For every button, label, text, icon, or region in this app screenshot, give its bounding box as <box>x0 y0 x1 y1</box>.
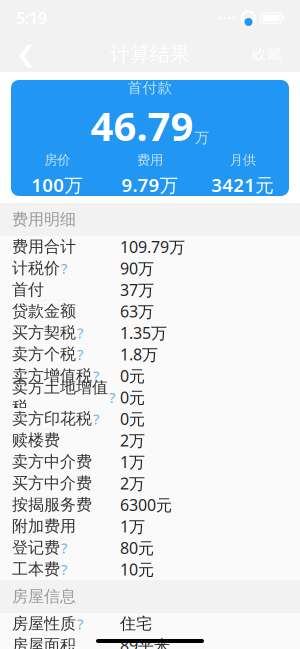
staticText: ? <box>93 409 99 428</box>
staticText: ? <box>109 387 115 407</box>
staticText: 登记费 <box>12 538 60 558</box>
staticText: 首付款 <box>127 79 172 97</box>
staticText: ? <box>77 614 83 633</box>
staticText: 住宅 <box>120 614 152 634</box>
staticText: 2万 <box>120 473 145 494</box>
staticText: 1万 <box>120 516 145 537</box>
staticText: 贷款金额 <box>12 301 76 321</box>
staticText: 2万 <box>120 430 145 451</box>
staticText: 63万 <box>120 301 154 322</box>
staticText: 卖方中介费 <box>12 452 92 472</box>
staticText: ? <box>61 559 67 579</box>
button[interactable]: Back <box>6 36 46 72</box>
staticText: 卖方土地增值税 <box>12 378 108 417</box>
staticText: ? <box>93 366 99 385</box>
staticText: 月供 <box>230 152 256 168</box>
staticText: 买方中介费 <box>12 473 92 493</box>
staticText: 房屋面积 <box>12 635 76 649</box>
staticText: 费用合计 <box>12 237 76 257</box>
staticText: 按揭服务费 <box>12 495 92 515</box>
staticText: 89平米 <box>120 635 170 649</box>
staticText: 费用明细 <box>12 210 76 229</box>
staticText: 6300元 <box>120 494 172 515</box>
staticText: ? <box>77 344 83 364</box>
staticText: 万 <box>194 129 209 147</box>
staticText: ? <box>61 538 67 557</box>
staticText: 90万 <box>120 258 154 279</box>
staticText: 工本费 <box>12 559 60 579</box>
staticText: 赎楼费 <box>12 430 60 450</box>
staticText: 卖方印花税 <box>12 409 92 429</box>
staticText: 卖方个税 <box>12 344 76 364</box>
staticText: ? <box>61 258 67 278</box>
staticText: 0元 <box>120 365 145 386</box>
staticText: 37万 <box>120 279 154 300</box>
staticText: 房价 <box>44 152 70 168</box>
staticText: 9.79万 <box>121 172 178 197</box>
staticText: 买方契税 <box>12 323 76 343</box>
staticText: 46.79 <box>90 99 193 152</box>
staticText: 计税价 <box>12 258 60 278</box>
staticText: 首付 <box>12 280 44 300</box>
staticText: 收藏 <box>252 45 282 63</box>
staticText: 100万 <box>31 172 83 197</box>
staticText: ? <box>77 323 83 342</box>
staticText: 3421元 <box>211 172 274 197</box>
staticText: 房屋信息 <box>12 587 76 606</box>
staticText: 1.8万 <box>120 344 158 365</box>
staticText: ❮ <box>16 41 35 67</box>
staticText: 0元 <box>120 408 145 429</box>
staticText: 房屋性质 <box>12 614 76 634</box>
staticText: 10元 <box>120 559 154 580</box>
staticText: 计算结果 <box>110 42 190 66</box>
staticText: 80元 <box>120 537 154 558</box>
staticText: 费用 <box>137 152 163 168</box>
staticText: 0元 <box>120 387 145 408</box>
staticText: 附加费用 <box>12 516 76 536</box>
staticText: 5:19 <box>16 7 47 29</box>
staticText: 1万 <box>120 451 145 472</box>
staticText: 卖方增值税 <box>12 366 92 386</box>
staticText: 109.79万 <box>120 236 185 257</box>
staticText: 1.35万 <box>120 322 167 343</box>
